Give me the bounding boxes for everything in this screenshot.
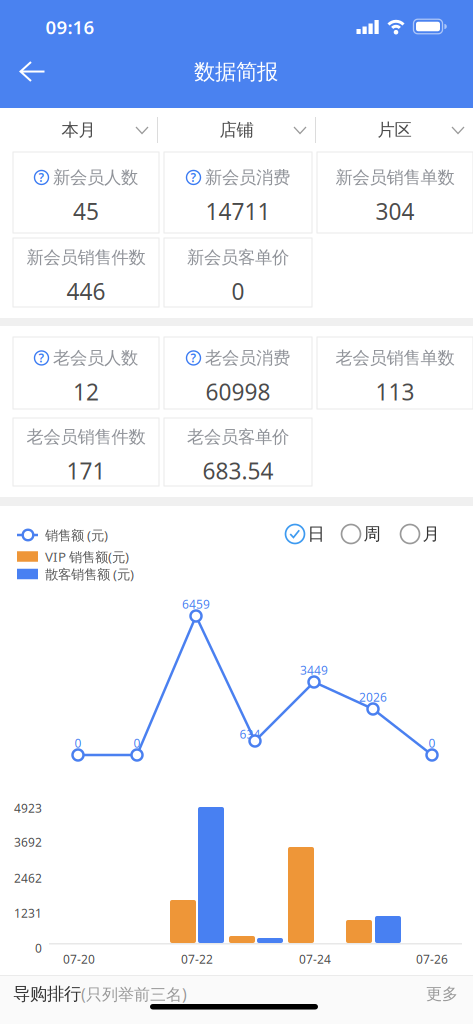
staticText: 导购排行 bbox=[13, 983, 81, 1005]
staticText: 07-22 bbox=[181, 951, 213, 967]
staticText: 113 bbox=[375, 377, 414, 407]
button[interactable]: 帮助 bbox=[186, 350, 201, 365]
button[interactable]: 店铺 bbox=[158, 108, 315, 152]
staticText: 0 bbox=[428, 735, 435, 751]
staticText: 0 bbox=[133, 735, 140, 751]
staticText: 新会员消费 bbox=[205, 167, 290, 188]
staticText: 新会员客单价 bbox=[187, 247, 289, 268]
staticText: 446 bbox=[66, 276, 105, 306]
staticText: 634 bbox=[239, 726, 260, 742]
staticText: 0 bbox=[35, 940, 42, 956]
staticText: 本月 bbox=[61, 119, 95, 141]
button[interactable]: 周 bbox=[341, 522, 380, 546]
button[interactable]: 片区 bbox=[316, 108, 473, 152]
staticText: ? bbox=[38, 350, 44, 366]
staticText: 4923 bbox=[14, 800, 42, 816]
staticText: 老会员人数 bbox=[53, 347, 138, 369]
button[interactable]: 帮助 bbox=[34, 170, 49, 185]
staticText: 3449 bbox=[300, 662, 328, 678]
staticText: 散客销售额 (元) bbox=[45, 565, 134, 583]
staticText: 12 bbox=[73, 377, 99, 407]
staticText: 新会员销售件数 bbox=[26, 247, 145, 268]
staticText: 老会员客单价 bbox=[187, 426, 289, 448]
staticText: 新会员人数 bbox=[53, 167, 138, 188]
button[interactable]: 本月 bbox=[0, 108, 157, 152]
staticText: VIP 销售额(元) bbox=[45, 548, 129, 565]
button[interactable]: 更多 bbox=[426, 984, 458, 1004]
staticText: 新会员销售单数 bbox=[335, 167, 454, 188]
staticText: 周 bbox=[363, 523, 380, 545]
button[interactable]: 帮助 bbox=[186, 170, 201, 185]
staticText: 数据简报 bbox=[194, 59, 278, 85]
staticText: 店铺 bbox=[219, 119, 253, 141]
staticText: 老会员消费 bbox=[205, 347, 290, 369]
staticText: 45 bbox=[73, 196, 99, 226]
staticText: 老会员销售单数 bbox=[335, 347, 454, 369]
staticText: 6459 bbox=[182, 596, 210, 612]
staticText: 07-26 bbox=[416, 951, 448, 967]
staticText: 销售额 (元) bbox=[45, 526, 108, 544]
button[interactable]: 日 bbox=[285, 522, 324, 546]
button[interactable]: Back bbox=[18, 62, 45, 82]
staticText: 老会员销售件数 bbox=[26, 426, 145, 448]
staticText: 2462 bbox=[14, 870, 42, 886]
staticText: ? bbox=[190, 350, 196, 366]
staticText: ? bbox=[38, 169, 44, 185]
staticText: 2026 bbox=[359, 689, 387, 705]
staticText: 09:16 bbox=[45, 15, 94, 39]
staticText: 0 bbox=[231, 276, 244, 306]
staticText: 14711 bbox=[205, 196, 270, 226]
staticText: 3692 bbox=[14, 834, 42, 850]
staticText: 片区 bbox=[377, 119, 411, 141]
staticText: 171 bbox=[66, 456, 105, 486]
button[interactable]: 帮助 bbox=[34, 350, 49, 365]
staticText: (只列举前三名) bbox=[81, 983, 187, 1005]
staticText: 更多 bbox=[426, 984, 458, 1004]
staticText: 683.54 bbox=[202, 456, 273, 486]
staticText: 日 bbox=[307, 523, 324, 545]
staticText: ? bbox=[190, 169, 196, 185]
staticText: 月 bbox=[422, 523, 439, 545]
button[interactable]: 月 bbox=[400, 522, 439, 546]
staticText: 0 bbox=[74, 735, 81, 751]
staticText: 1231 bbox=[14, 905, 42, 921]
staticText: 60998 bbox=[205, 377, 270, 407]
staticText: 304 bbox=[375, 196, 414, 226]
staticText: 07-20 bbox=[63, 951, 95, 967]
staticText: 07-24 bbox=[299, 951, 331, 967]
